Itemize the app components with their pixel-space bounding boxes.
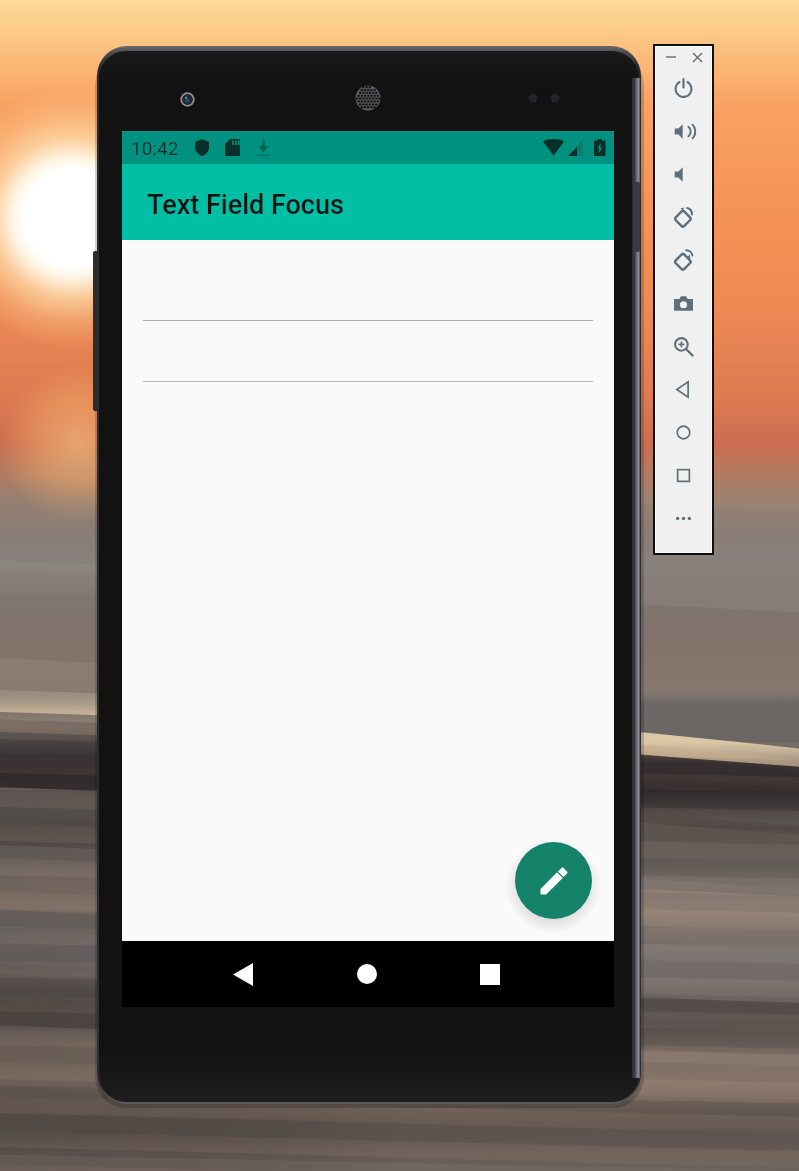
button[interactable]: Home	[656, 411, 711, 454]
button[interactable]: Edit	[515, 842, 592, 919]
button[interactable]: Overview	[656, 454, 711, 497]
button[interactable]: Power	[656, 67, 711, 110]
button[interactable]: Back	[656, 368, 711, 411]
button[interactable]: Minimize	[661, 47, 681, 67]
button[interactable]	[143, 291, 593, 321]
button[interactable]: Recent apps	[455, 941, 525, 1007]
button[interactable]: Zoom	[656, 325, 711, 368]
button[interactable]: More	[656, 497, 711, 540]
button[interactable]: Rotate left	[656, 196, 711, 239]
button[interactable]: Volume down	[656, 153, 711, 196]
button[interactable]	[143, 352, 593, 382]
button[interactable]: Close	[687, 47, 707, 67]
button[interactable]: Home	[332, 941, 402, 1007]
staticText: 10:42	[131, 137, 179, 159]
button[interactable]: Take screenshot	[656, 282, 711, 325]
button[interactable]: Volume up	[656, 110, 711, 153]
button[interactable]: Rotate right	[656, 239, 711, 282]
staticText: Text Field Focus	[147, 189, 344, 221]
button[interactable]: Back	[208, 941, 278, 1007]
